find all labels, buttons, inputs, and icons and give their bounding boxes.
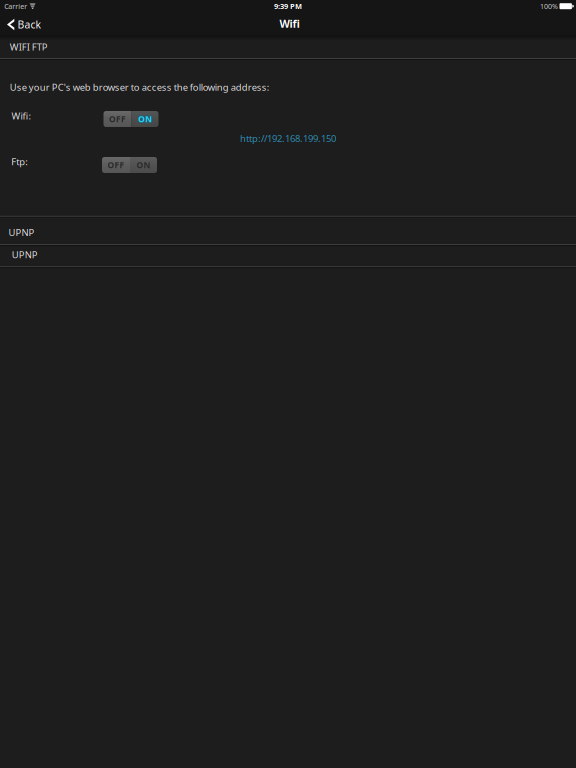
staticText: http://192.168.199.150: [240, 132, 336, 145]
button[interactable]: http://192.168.199.150: [0, 35, 336, 145]
staticText: OFF: [107, 159, 124, 171]
staticText: Wifi: [279, 16, 299, 31]
staticText: OFF: [109, 113, 126, 125]
staticText: UPNP: [12, 248, 38, 261]
staticText: Ftp:: [11, 155, 28, 168]
button[interactable]: Wifi on: [103, 111, 158, 127]
staticText: Back: [17, 17, 41, 32]
staticText: ON: [138, 113, 152, 125]
button[interactable]: Back: [0, 14, 47, 35]
staticText: Use your PC's web browser to access the …: [10, 81, 270, 93]
staticText: WIFI FTP: [10, 40, 48, 53]
button[interactable]: UPNP: [0, 246, 576, 266]
staticText: Wifi:: [12, 109, 32, 122]
staticText: 9:39 PM: [274, 1, 302, 11]
staticText: 100%: [540, 1, 558, 11]
staticText: UPNP: [9, 226, 35, 239]
button[interactable]: Ftp off: [102, 157, 157, 173]
staticText: ON: [136, 159, 150, 171]
staticText: Carrier: [4, 1, 27, 11]
